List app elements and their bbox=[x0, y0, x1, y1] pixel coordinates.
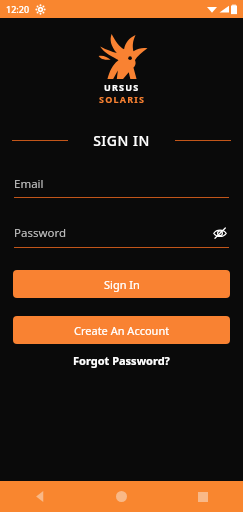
button[interactable]: Sign In bbox=[13, 270, 230, 298]
staticText: SIGN IN bbox=[93, 131, 150, 150]
button[interactable]: Forgot Password? bbox=[0, 353, 243, 368]
staticText: Password bbox=[14, 225, 67, 241]
staticText: URSUS bbox=[104, 81, 140, 93]
button[interactable]: Create An Account bbox=[13, 316, 230, 344]
staticText: Forgot Password? bbox=[73, 353, 170, 368]
staticText: SOLARIS bbox=[99, 93, 146, 105]
button[interactable]: Home bbox=[81, 481, 162, 512]
button[interactable]: Recent apps bbox=[162, 481, 243, 512]
staticText: Create An Account bbox=[74, 323, 170, 338]
staticText: Email bbox=[14, 176, 44, 192]
button[interactable]: Back bbox=[0, 481, 81, 512]
staticText: Sign In bbox=[104, 277, 140, 292]
staticText: 12:20 bbox=[6, 3, 30, 15]
button[interactable]: Show password bbox=[211, 224, 229, 242]
